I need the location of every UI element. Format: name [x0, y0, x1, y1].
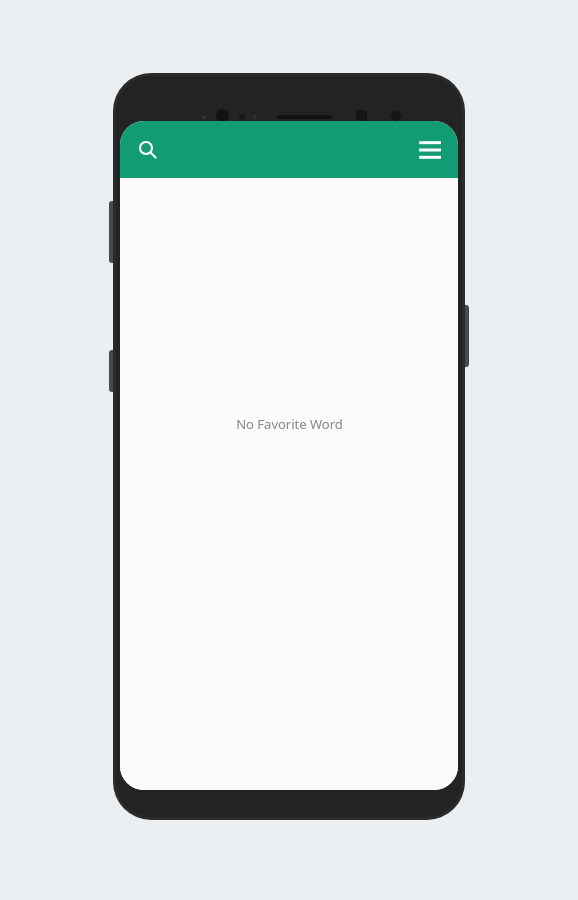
- staticText: No Favorite Word: [236, 415, 343, 433]
- button[interactable]: Menu: [408, 128, 452, 172]
- button[interactable]: Search: [126, 128, 170, 172]
